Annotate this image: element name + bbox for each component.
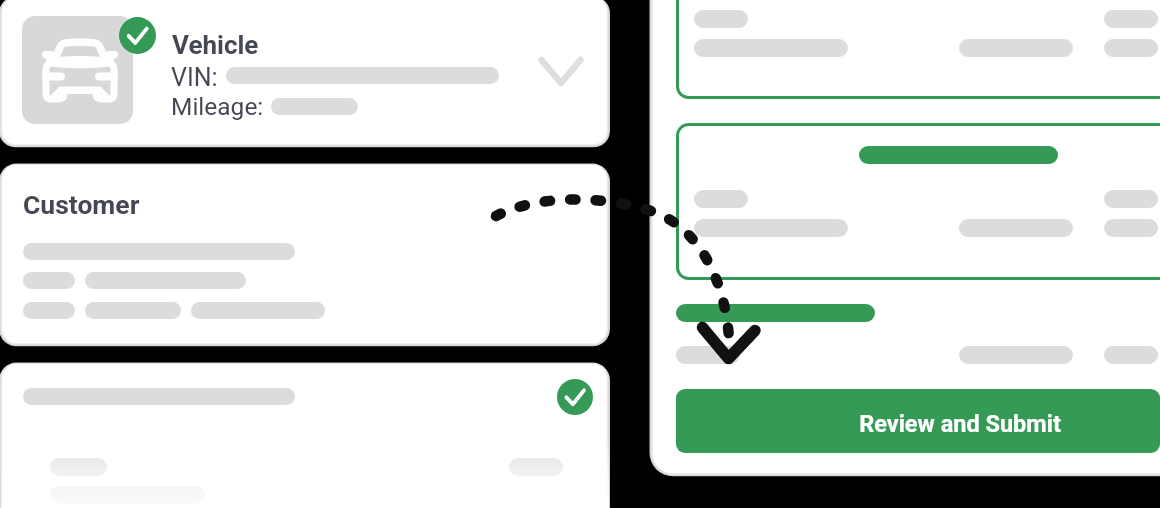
button[interactable] (676, 123, 1160, 280)
staticText: Mileage: (171, 92, 264, 121)
staticText: VIN: (171, 63, 218, 92)
button[interactable]: Expand vehicle details (538, 56, 584, 88)
button[interactable]: Review and Submit (676, 389, 1160, 453)
button[interactable] (2, 363, 609, 508)
button[interactable]: Customer (2, 164, 609, 344)
staticText: Vehicle (172, 30, 259, 60)
staticText: Customer (23, 189, 140, 220)
staticText: Review and Submit (859, 410, 1061, 438)
button[interactable]: Vehicle (2, 0, 609, 145)
button[interactable] (676, 0, 1160, 99)
